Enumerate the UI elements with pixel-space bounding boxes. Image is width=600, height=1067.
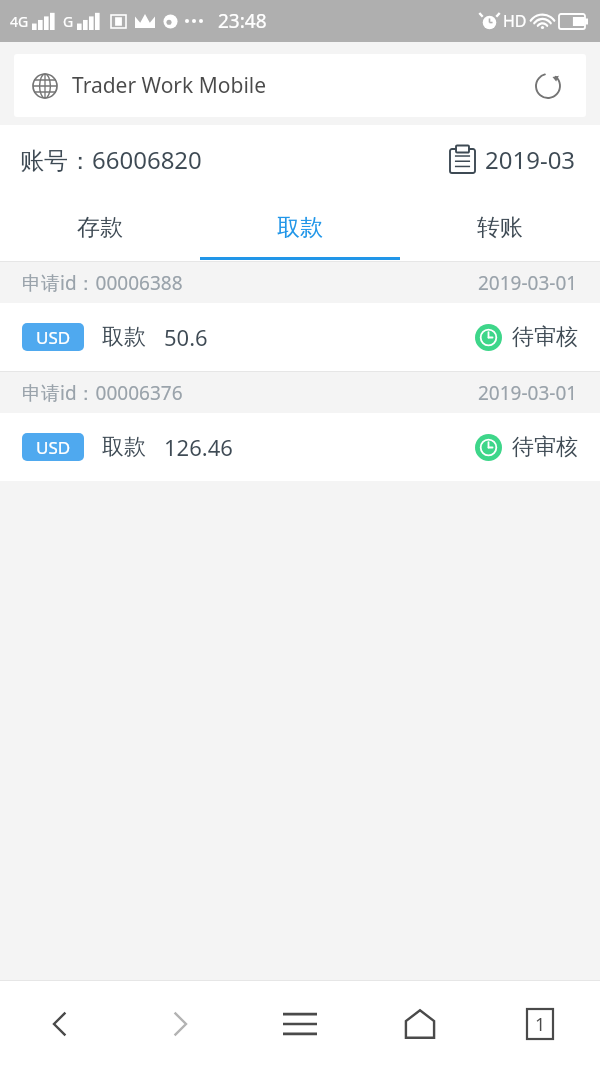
staticText: 待审核 (512, 323, 578, 351)
staticText: USD (36, 436, 71, 459)
staticText: 50.6 (164, 322, 208, 352)
button[interactable]: 存款 (0, 193, 200, 261)
staticText: 2019-03 (485, 143, 576, 176)
button[interactable]: 申请id：00006376 (0, 371, 600, 481)
staticText: 126.46 (164, 432, 233, 462)
button[interactable]: 转账 (400, 193, 600, 261)
button[interactable]: Trader Work Mobile (14, 54, 586, 117)
staticText: G (63, 12, 74, 31)
staticText: 取款 (277, 213, 323, 242)
staticText: Trader Work Mobile (72, 71, 267, 100)
staticText: 1 (535, 1012, 546, 1037)
staticText: HD (503, 10, 527, 32)
staticText: 取款 (102, 323, 146, 351)
staticText: 申请id：00006376 (22, 380, 183, 406)
staticText: 23:48 (218, 8, 267, 34)
staticText: 取款 (102, 433, 146, 461)
button[interactable]: Refresh (528, 66, 568, 106)
staticText: 2019-03-01 (478, 380, 578, 406)
staticText: 申请id：00006388 (22, 270, 183, 296)
staticText: 转账 (477, 213, 523, 242)
staticText: 存款 (77, 213, 123, 242)
button[interactable]: 取款 (200, 193, 400, 261)
button[interactable]: Tabs (480, 981, 600, 1067)
button[interactable]: Menu (240, 981, 360, 1067)
staticText: 账号：66006820 (20, 143, 202, 176)
button[interactable]: Back (0, 981, 120, 1067)
button[interactable]: 2019-03 (445, 139, 580, 180)
staticText: USD (36, 326, 71, 349)
button[interactable]: Forward (120, 981, 240, 1067)
staticText: 待审核 (512, 433, 578, 461)
button[interactable]: 申请id：00006388 (0, 261, 600, 371)
staticText: 2019-03-01 (478, 270, 578, 296)
button[interactable]: Home (360, 981, 480, 1067)
staticText: 4G (10, 12, 29, 31)
